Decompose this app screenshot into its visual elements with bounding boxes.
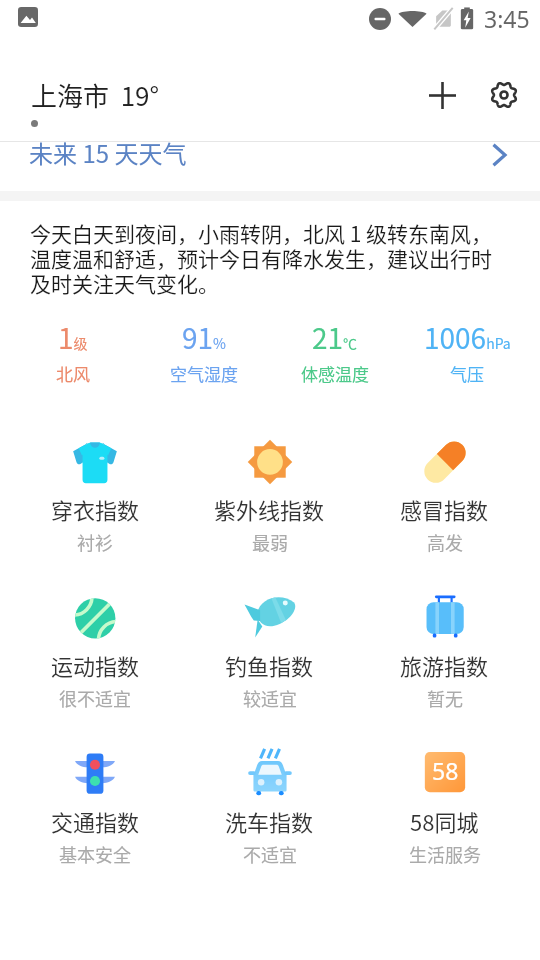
button[interactable]: 感冒指数 bbox=[357, 434, 532, 555]
staticText: 高发 bbox=[427, 529, 463, 555]
button[interactable]: 旅游指数 bbox=[357, 590, 532, 711]
button[interactable]: 穿衣指数 bbox=[8, 434, 182, 555]
staticText: 1级 bbox=[58, 317, 88, 358]
staticText: 不适宜 bbox=[243, 841, 297, 867]
staticText: 基本安全 bbox=[59, 841, 131, 867]
staticText: 21℃ bbox=[312, 317, 358, 358]
staticText: 生活服务 bbox=[409, 841, 481, 867]
button[interactable]: Add city bbox=[416, 69, 468, 121]
button[interactable]: 钓鱼指数 bbox=[182, 590, 357, 711]
button[interactable]: 未来 15 天天气 bbox=[0, 142, 540, 191]
staticText: 91% bbox=[182, 317, 226, 358]
staticText: 1006hPa bbox=[424, 317, 511, 358]
staticText: 感冒指数 bbox=[400, 493, 489, 525]
staticText: 体感温度 bbox=[301, 361, 369, 386]
staticText: 未来 15 天天气 bbox=[29, 135, 187, 170]
staticText: 运动指数 bbox=[51, 649, 140, 681]
staticText: 衬衫 bbox=[77, 529, 113, 555]
staticText: 钓鱼指数 bbox=[225, 649, 314, 681]
staticText: 紫外线指数 bbox=[214, 493, 325, 525]
staticText: 穿衣指数 bbox=[51, 493, 140, 525]
staticText: 空气湿度 bbox=[170, 361, 238, 386]
staticText: 上海市 19° bbox=[31, 76, 160, 114]
staticText: 北风 bbox=[56, 361, 90, 386]
staticText: 很不适宜 bbox=[59, 685, 131, 711]
staticText: 洗车指数 bbox=[225, 805, 314, 837]
staticText: 今天白天到夜间，小雨转阴，北风 1 级转东南风，温度温和舒适，预计今日有降水发生… bbox=[30, 218, 495, 298]
staticText: 最弱 bbox=[252, 529, 288, 555]
button[interactable]: 运动指数 bbox=[8, 590, 182, 711]
button[interactable]: 洗车指数 bbox=[182, 746, 357, 867]
staticText: 3:45 bbox=[484, 3, 530, 34]
button[interactable]: 紫外线指数 bbox=[182, 434, 357, 555]
staticText: 暂无 bbox=[427, 685, 463, 711]
button[interactable]: Settings bbox=[478, 69, 530, 121]
staticText: 气压 bbox=[450, 361, 484, 386]
staticText: 旅游指数 bbox=[400, 649, 489, 681]
staticText: 交通指数 bbox=[51, 805, 140, 837]
button[interactable]: 58 bbox=[357, 746, 532, 867]
staticText: 58 bbox=[432, 755, 459, 786]
staticText: 58同城 bbox=[410, 805, 479, 837]
button[interactable]: 交通指数 bbox=[8, 746, 182, 867]
staticText: 较适宜 bbox=[243, 685, 297, 711]
